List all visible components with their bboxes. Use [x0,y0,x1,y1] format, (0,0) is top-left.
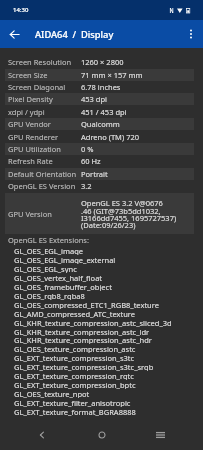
button[interactable]: GL_OES_EGL_sync [0,264,203,273]
button[interactable]: GPU Version [5,193,194,234]
button[interactable]: OpenGL ES Extensions: [5,234,194,246]
button[interactable]: Screen Resolution [5,56,194,68]
button[interactable]: GL_EXT_texture_compression_bptc [0,380,203,389]
staticText: xdpi / ydpi [8,107,81,117]
button[interactable]: GPU Vendor [5,118,194,130]
button[interactable]: GL_EXT_texture_compression_s3tc_srgb [0,362,203,371]
staticText: 451 / 453 dpi [81,107,127,117]
staticText: GL_OES_framebuffer_object [14,282,112,291]
staticText: GL_OES_texture_npot [14,389,90,398]
staticText: GL_EXT_texture_compression_s3tc [14,353,135,362]
staticText: Screen Diagonal [8,82,81,92]
staticText: GL_OES_rgb8_rgba8 [14,291,85,300]
button[interactable]: GL_EXT_texture_compression_rgtc [0,371,203,380]
staticText: GL_EXT_texture_compression_rgtc [14,371,134,380]
button[interactable]: xdpi / ydpi [5,106,194,118]
button[interactable]: GL_OES_compressed_ETC1_RGB8_texture [0,300,203,309]
staticText: Refresh Rate [8,156,81,166]
button[interactable]: GL_OES_framebuffer_object [0,282,203,291]
button[interactable]: More options [179,22,203,46]
staticText: GL_OES_compressed_ETC1_RGB8_texture [14,300,159,309]
button[interactable]: GL_OES_EGL_image_external [0,255,203,264]
button[interactable]: GL_EXT_texture_compression_s3tc [0,353,203,362]
button[interactable]: Back [27,420,57,450]
staticText: 60 Hz [81,156,101,166]
staticText: 453 dpi [81,94,107,104]
staticText: GPU Utilization [8,144,81,154]
button[interactable]: Screen Diagonal [5,81,194,93]
staticText: 1260 × 2800 [81,57,124,67]
staticText: GL_OES_EGL_sync [14,264,77,273]
staticText: GPU Version [8,209,52,219]
staticText: GL_KHR_texture_compression_astc_ldr [14,327,150,336]
staticText: OpenGL ES Extensions: [8,235,89,245]
button[interactable]: GL_EXT_texture_filter_anisotropic [0,398,203,407]
button[interactable]: GPU Utilization [5,143,194,155]
staticText: GL_KHR_texture_compression_astc_sliced_3… [14,318,172,327]
button[interactable]: GL_OES_vertex_half_float [0,273,203,282]
button[interactable]: GL_KHR_texture_compression_astc_hdr [0,335,203,344]
staticText: GL_EXT_texture_filter_anisotropic [14,398,131,407]
button[interactable]: GL_EXT_texture_format_BGRA8888 [0,407,203,416]
staticText: Portrait [81,169,108,179]
staticText: 6.78 inches [81,82,121,92]
button[interactable]: Screen Size [5,69,194,81]
staticText: Qualcomm [81,119,120,129]
staticText: Default Orientation [8,169,81,179]
staticText: AIDA64 / Display [35,28,114,41]
staticText: Screen Size [8,70,81,80]
staticText: Screen Resolution [8,57,81,67]
staticText: GL_OES_EGL_image [14,246,84,255]
staticText: GPU Vendor [8,119,81,129]
button[interactable]: GL_OES_rgb8_rgba8 [0,291,203,300]
staticText: 3.2 [81,181,92,191]
button[interactable]: GL_OES_EGL_image [0,246,203,255]
staticText: GL_AMD_compressed_ATC_texture [14,309,136,318]
button[interactable]: Refresh Rate [5,155,194,167]
button[interactable]: GPU Renderer [5,131,194,143]
button[interactable]: Home [87,420,117,450]
staticText: OpenGL ES 3.2 V@0676 .46 (GIT@73b5dd1032… [81,198,177,230]
staticText: Pixel Density [8,94,81,104]
button[interactable]: GL_OES_texture_npot [0,389,203,398]
button[interactable]: GL_KHR_texture_compression_astc_sliced_3… [0,318,203,327]
button[interactable]: Navigate up [0,20,28,48]
staticText: GL_KHR_texture_compression_astc_hdr [14,335,152,344]
staticText: GL_EXT_texture_compression_bptc [14,380,136,389]
staticText: Adreno (TM) 720 [81,132,139,142]
button[interactable]: Recent apps [145,420,175,450]
staticText: GL_EXT_texture_compression_s3tc_srgb [14,362,154,371]
staticText: 71 mm × 157 mm [81,70,143,80]
staticText: GL_OES_vertex_half_float [14,273,103,282]
staticText: 14:30 [13,6,29,14]
button[interactable]: GL_OES_texture_compression_astc [0,344,203,353]
staticText: GL_OES_EGL_image_external [14,255,116,264]
staticText: GL_OES_texture_compression_astc [14,344,136,353]
button[interactable]: GL_KHR_texture_compression_astc_ldr [0,327,203,336]
staticText: GPU Renderer [8,132,81,142]
staticText: GL_EXT_texture_format_BGRA8888 [14,407,136,416]
staticText: 0 % [81,144,94,154]
button[interactable]: OpenGL ES Version [5,180,194,192]
button[interactable]: Default Orientation [5,168,194,180]
button[interactable]: GL_AMD_compressed_ATC_texture [0,309,203,318]
staticText: OpenGL ES Version [8,181,81,191]
button[interactable]: Pixel Density [5,93,194,105]
